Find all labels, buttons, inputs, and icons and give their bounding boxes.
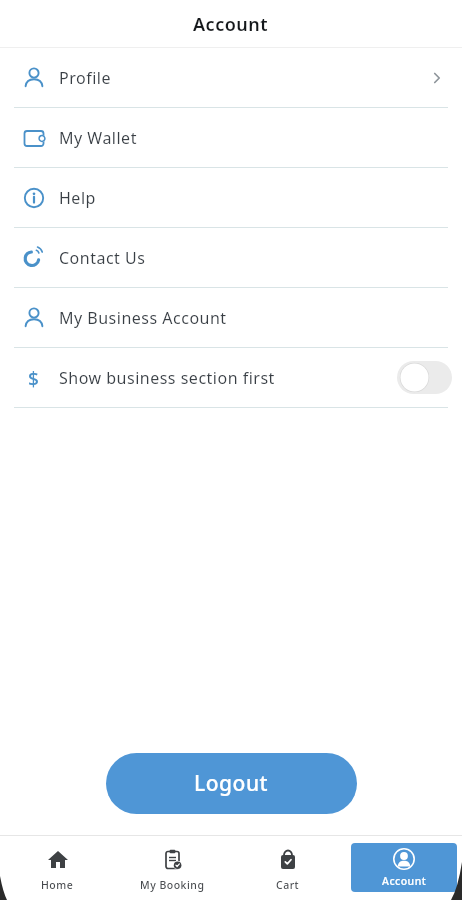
staticText: Home [41,878,74,892]
button[interactable]: Contact Us [0,228,462,288]
staticText: Cart [276,878,300,892]
button[interactable]: My Wallet [0,108,462,168]
button[interactable]: My Business Account [0,288,462,348]
staticText: Logout [194,769,269,798]
staticText: Show business section first [59,367,275,389]
staticText: $ [28,366,40,390]
staticText: Account [193,12,269,37]
staticText: My Business Account [59,307,227,329]
button[interactable]: My Booking [140,835,205,900]
button[interactable]: Help [0,168,462,228]
staticText: Contact Us [59,247,146,269]
button[interactable] [397,361,452,394]
button[interactable]: Account [351,843,457,892]
staticText: Help [59,187,96,209]
button[interactable]: $ [0,348,462,408]
button[interactable]: Logout [106,753,357,814]
staticText: Profile [59,67,111,89]
staticText: My Booking [140,878,205,892]
button[interactable]: Home [41,835,74,900]
staticText: Account [382,874,427,888]
button[interactable]: Profile [0,48,462,108]
button[interactable]: Cart [276,835,300,900]
staticText: My Wallet [59,127,137,149]
